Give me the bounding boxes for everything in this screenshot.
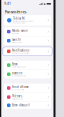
staticText: Mode avion (12, 29, 28, 32)
staticText: 9:41 (4, 2, 11, 5)
button[interactable]: Sans fil (4, 36, 51, 45)
button[interactable]: Batterie (4, 70, 51, 79)
staticText: Identifiant Apple, iCloud, Contenus (13, 20, 34, 22)
staticText: Tobias M. (13, 17, 25, 20)
staticText: Écran verrouillé (12, 89, 24, 91)
button[interactable]: Thèmes (4, 93, 51, 101)
button[interactable]: Fond d'écran (4, 84, 51, 92)
staticText: Fond d'écran (12, 85, 29, 89)
staticText: Écran d'accueil (12, 103, 30, 107)
staticText: Désactivé (12, 32, 19, 34)
staticText: Clair, Sombre, Auto (12, 98, 23, 100)
button[interactable]: Mode avion (4, 27, 51, 36)
staticText: Notifications (12, 49, 29, 52)
staticText: Bannières, Sons, Pastilles (12, 52, 29, 54)
button[interactable]: Écran d'accueil (4, 102, 51, 109)
staticText: Luminosité, affichage (12, 66, 26, 68)
button[interactable]: Tobias M. (4, 15, 51, 26)
staticText: Paramètres (4, 9, 26, 14)
staticText: Maison_5GHz (12, 42, 22, 43)
button[interactable]: Notifications (4, 47, 51, 56)
button[interactable]: Écran (4, 61, 51, 69)
staticText: Sans fil (12, 38, 21, 41)
staticText: Thèmes (12, 94, 22, 98)
staticText: Batterie (12, 71, 23, 75)
staticText: Écran (12, 62, 18, 66)
staticText: Économie d'énergie (12, 75, 26, 77)
staticText: et achats, Localiser (13, 22, 26, 24)
